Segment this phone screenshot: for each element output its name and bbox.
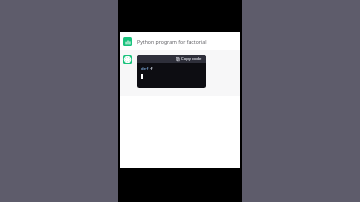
staticText: f bbox=[150, 66, 153, 72]
staticText: Python program for factorial bbox=[137, 38, 207, 45]
button[interactable]: ChatGPT avatar bbox=[120, 50, 240, 96]
staticText: def bbox=[141, 66, 149, 72]
button[interactable]: Copy code bbox=[175, 55, 203, 63]
other: User avatar bbox=[123, 37, 132, 46]
staticText: Copy code bbox=[181, 56, 202, 62]
button[interactable]: User avatar bbox=[120, 32, 240, 50]
other: Copy code bbox=[176, 57, 180, 61]
other: ChatGPT avatar bbox=[123, 55, 132, 64]
